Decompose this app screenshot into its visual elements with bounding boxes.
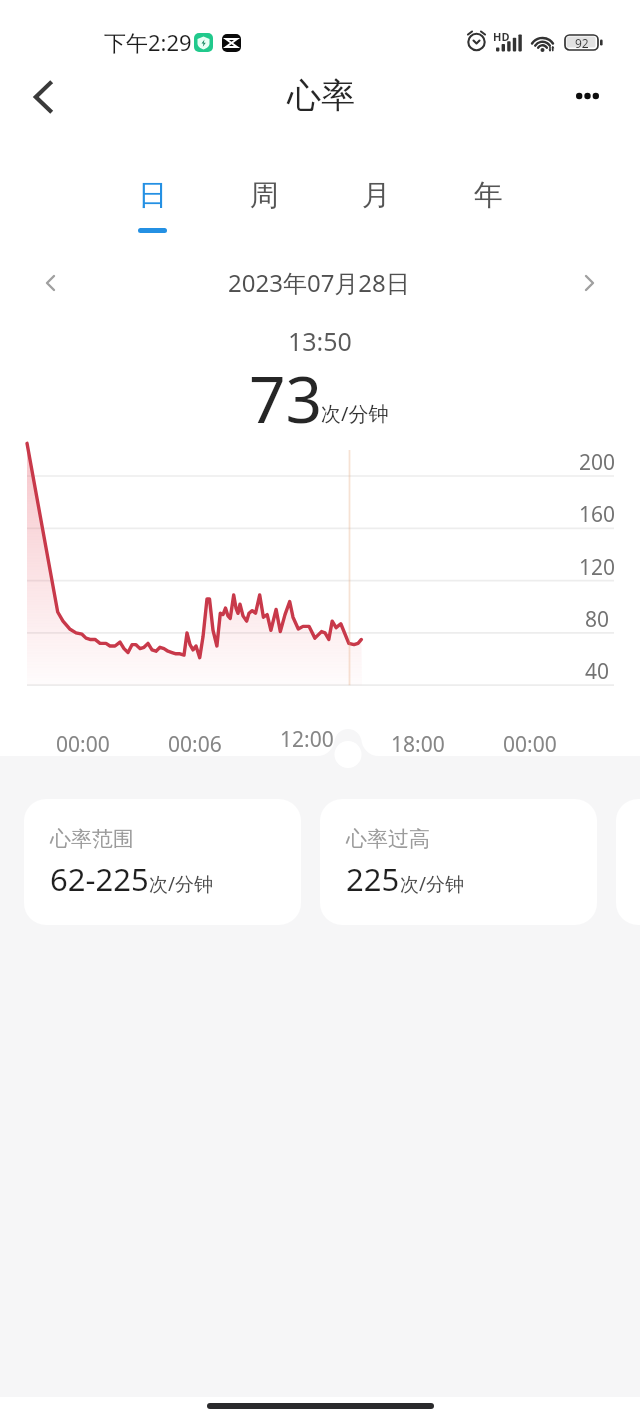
button[interactable]: More options	[553, 61, 623, 131]
button[interactable]: Previous day	[25, 257, 77, 309]
staticText: 日	[138, 177, 167, 214]
staticText: HD	[493, 29, 510, 44]
staticText: 73	[249, 355, 323, 442]
staticText: 200	[579, 448, 616, 477]
button[interactable]: 月	[336, 168, 416, 240]
button[interactable]: Back	[8, 62, 78, 132]
staticText: 00:06	[168, 730, 222, 759]
staticText: 心率范围	[50, 826, 134, 852]
staticText: 225	[346, 858, 400, 900]
staticText: 下午2:29	[104, 27, 192, 57]
staticText: 12:00	[280, 725, 334, 754]
staticText: 40	[585, 657, 610, 686]
button[interactable]: 日	[112, 168, 192, 240]
staticText: 2023年07月28日	[228, 266, 410, 299]
staticText: 62-225	[50, 858, 149, 900]
button[interactable]: 心率范围	[24, 799, 301, 925]
staticText: 160	[579, 500, 616, 529]
button[interactable]: 年	[448, 168, 528, 240]
staticText: 次/分钟	[321, 400, 389, 427]
button[interactable]: 周	[224, 168, 304, 240]
button[interactable]: Next day	[563, 257, 615, 309]
staticText: 92	[575, 35, 589, 51]
staticText: 次/分钟	[149, 871, 214, 897]
staticText: 00:00	[503, 730, 557, 759]
staticText: 月	[362, 177, 391, 214]
staticText: 18:00	[391, 730, 445, 759]
staticText: 00:00	[56, 730, 110, 759]
staticText: 年	[474, 177, 503, 214]
staticText: 心率过高	[346, 826, 430, 852]
staticText: 120	[579, 553, 616, 582]
staticText: 心率	[287, 74, 355, 117]
staticText: 80	[585, 605, 610, 634]
button[interactable]: 心率过高	[320, 799, 597, 925]
staticText: 周	[250, 177, 279, 214]
staticText: 次/分钟	[400, 871, 465, 897]
staticText: 13:50	[288, 324, 352, 358]
